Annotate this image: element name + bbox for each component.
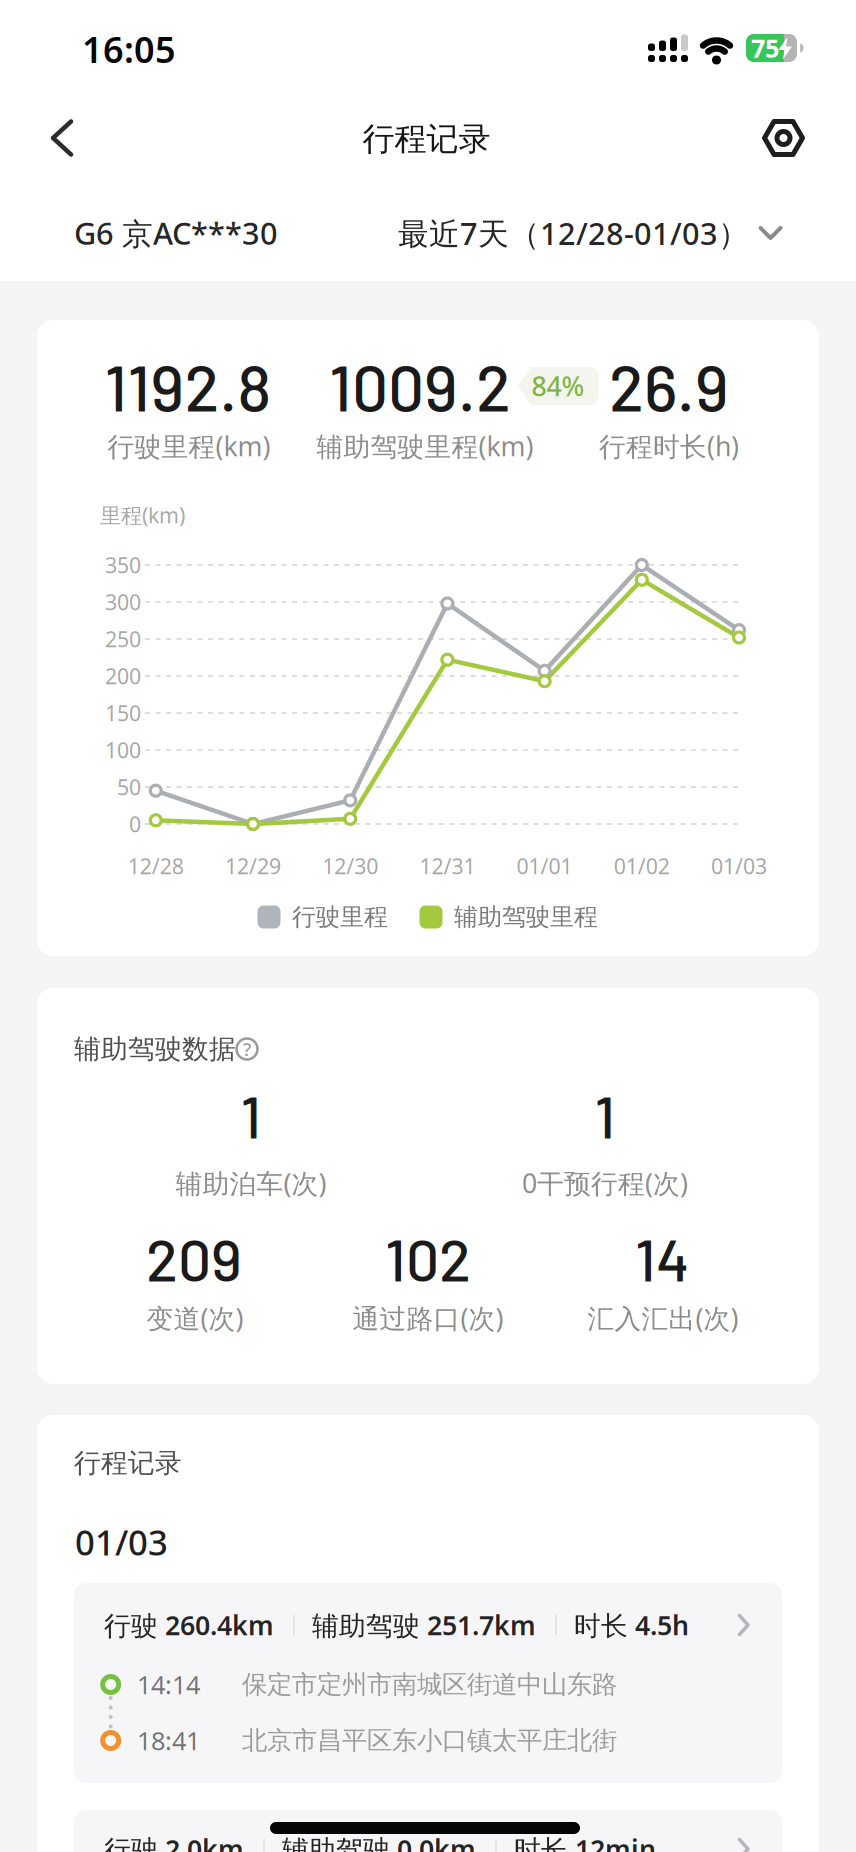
staticText: 12/30 [322, 852, 378, 880]
staticText: 辅助驾驶数据 [74, 1033, 236, 1065]
staticText: 行程时长(h) [599, 428, 739, 464]
staticText: 75 [751, 31, 779, 65]
staticText: 102 [385, 1223, 471, 1293]
staticText: 行驶里程 [292, 902, 388, 932]
staticText: 300 [105, 588, 141, 616]
staticText: 250 [105, 625, 141, 653]
staticText: 最近7天（12/28-01/03） [398, 213, 749, 253]
staticText: 1 [240, 1080, 261, 1150]
staticText: 18:41 [137, 1724, 200, 1757]
staticText: 84% [531, 368, 584, 404]
staticText: 辅助驾驶 251.7km [312, 1607, 536, 1643]
staticText: 行程记录 [74, 1447, 182, 1479]
button[interactable]: G6 京AC***30 [74, 213, 374, 253]
staticText: 北京市昌平区东小口镇太平庄北街 [242, 1725, 617, 1756]
staticText: 350 [105, 551, 141, 579]
button[interactable]: 行驶 260.4km [74, 1583, 782, 1783]
staticText: 01/03 [711, 852, 767, 880]
staticText: 01/01 [517, 852, 573, 880]
staticText: 行驶 2.0km [104, 1831, 244, 1852]
staticText: 0干预行程(次) [522, 1165, 688, 1201]
staticText: 行驶里程(km) [107, 428, 270, 464]
staticText: 汇入汇出(次) [587, 1300, 738, 1336]
staticText: 12/29 [225, 852, 281, 880]
staticText: 12/28 [128, 852, 184, 880]
staticText: 时长 12min [514, 1831, 656, 1852]
button[interactable]: Settings [762, 120, 804, 156]
staticText: 01/03 [75, 1519, 168, 1565]
staticText: 保定市定州市南城区街道中山东路 [242, 1669, 617, 1700]
staticText: 0 [129, 810, 141, 838]
button[interactable]: 最近7天（12/28-01/03） [398, 213, 782, 253]
staticText: 200 [105, 662, 141, 690]
staticText: 100 [105, 736, 141, 764]
staticText: 辅助驾驶里程(km) [316, 428, 533, 464]
staticText: G6 京AC***30 [74, 213, 278, 253]
staticText: 16:05 [82, 25, 176, 73]
button[interactable]: Back [51, 120, 75, 156]
staticText: 01/02 [614, 852, 670, 880]
staticText: 里程(km) [100, 501, 185, 529]
staticText: 12/31 [419, 852, 475, 880]
staticText: 14 [635, 1223, 689, 1293]
staticText: 150 [105, 699, 141, 727]
staticText: 变道(次) [146, 1300, 243, 1336]
button[interactable]: 行驶 2.0km [74, 1810, 782, 1852]
staticText: 1 [594, 1080, 615, 1150]
staticText: 行驶 260.4km [104, 1607, 274, 1643]
staticText: 辅助泊车(次) [175, 1165, 326, 1201]
staticText: 辅助驾驶 0.0km [282, 1831, 476, 1852]
staticText: 209 [146, 1223, 242, 1293]
staticText: 行程记录 [362, 119, 490, 159]
staticText: 通过路口(次) [352, 1300, 503, 1336]
staticText: ? [243, 1037, 251, 1061]
staticText: 辅助驾驶里程 [454, 902, 598, 932]
button[interactable]: 帮助 [235, 1037, 259, 1061]
staticText: 时长 4.5h [574, 1607, 689, 1643]
staticText: 1192.8 [104, 348, 271, 424]
staticText: 1009.2 [329, 348, 511, 424]
staticText: 50 [117, 773, 141, 801]
staticText: 14:14 [137, 1668, 200, 1701]
staticText: 26.9 [609, 348, 729, 424]
